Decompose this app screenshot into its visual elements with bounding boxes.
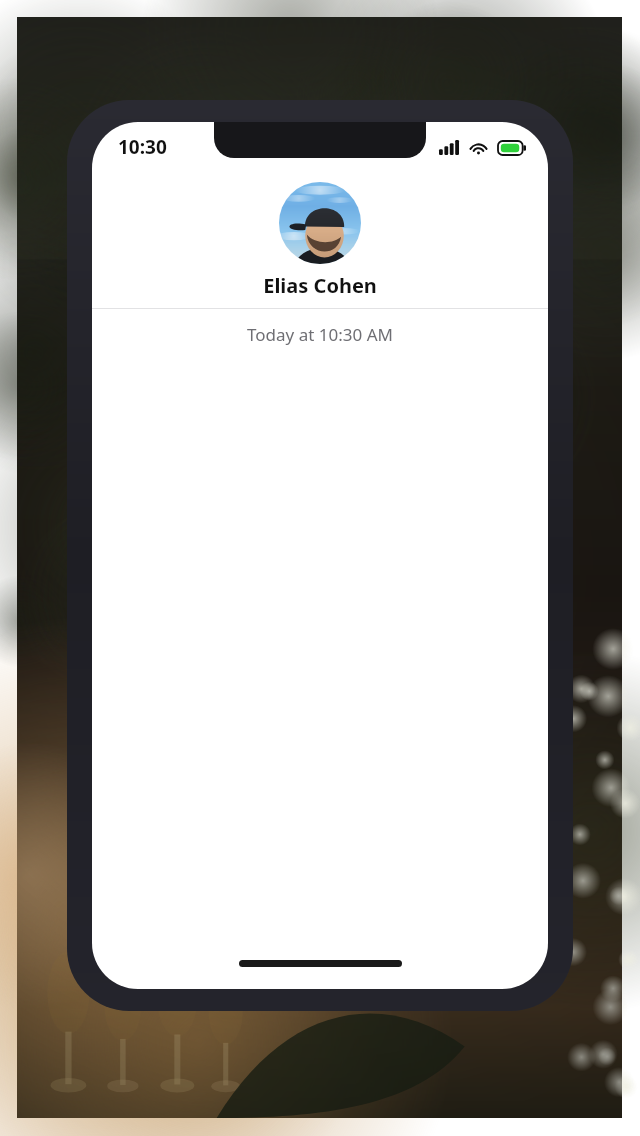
other: Wi-Fi xyxy=(469,141,488,155)
staticText: Elias Cohen xyxy=(263,272,377,299)
staticText: Today at 10:30 AM xyxy=(92,323,548,346)
button[interactable]: Elias Cohen profile photo xyxy=(92,182,548,299)
staticText: 10:30 xyxy=(118,134,167,160)
other: Battery xyxy=(498,141,526,155)
other: Elias Cohen profile photo xyxy=(279,182,361,264)
other: Cellular signal xyxy=(439,140,459,155)
